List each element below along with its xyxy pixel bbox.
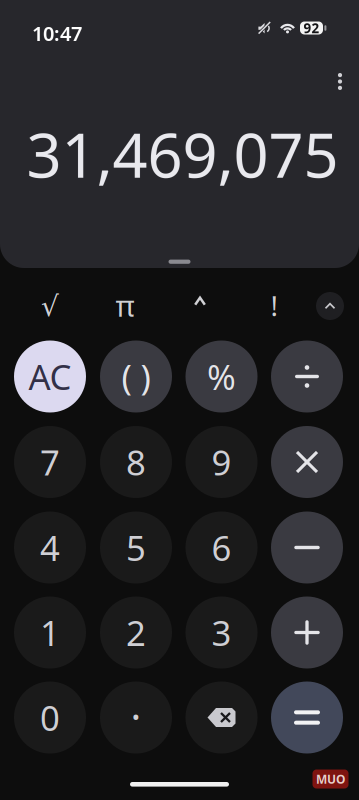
button[interactable]: 5 [100,511,172,583]
staticText: 8 [126,439,146,485]
staticText: 2 [126,609,146,655]
staticText: 92 [303,19,319,37]
button[interactable]: 0 [14,681,86,753]
button[interactable]: ( ) [100,340,172,412]
staticText: 9 [211,439,231,485]
staticText: 7 [40,439,60,485]
button[interactable]: % [185,340,257,412]
staticText: 1 [40,609,60,655]
staticText: 0 [40,694,60,740]
staticText: ! [270,287,278,324]
button[interactable]: Wi-Fi [280,22,295,34]
button[interactable]: Backspace [185,681,257,753]
button[interactable]: More functions [310,286,350,326]
button[interactable]: 8 [100,426,172,498]
button[interactable]: Subtract [271,511,343,583]
staticText: 31,469,075 [26,113,338,195]
button[interactable]: √ [22,284,78,328]
button[interactable]: Multiply [271,426,343,498]
staticText: 3 [211,609,231,655]
staticText: 6 [211,524,231,570]
staticText: ( ) [121,353,150,399]
button[interactable]: ! [246,283,302,327]
staticText: 5 [126,524,146,570]
staticText: 10:47 [32,20,82,47]
button[interactable]: · [100,681,172,753]
button[interactable]: 4 [14,511,86,583]
staticText: MUO [316,771,345,787]
button[interactable]: Add [271,596,343,668]
staticText: % [207,353,236,399]
button[interactable]: Equals [271,681,343,753]
button[interactable]: Divide [271,340,343,412]
button[interactable]: 6 [185,511,257,583]
button[interactable]: π [97,283,153,327]
staticText: √ [41,291,59,322]
button[interactable]: Exponent [172,279,228,323]
staticText: π [115,286,134,325]
button[interactable]: More options [323,64,357,98]
staticText: AC [28,353,71,399]
button[interactable]: AC [14,340,86,412]
staticText: · [130,689,141,742]
button[interactable]: 3 [185,596,257,668]
button[interactable]: 7 [14,426,86,498]
button[interactable]: 9 [185,426,257,498]
button[interactable]: Silent mode [258,22,271,34]
button[interactable]: 2 [100,596,172,668]
staticText: 4 [40,524,60,570]
button[interactable]: 1 [14,596,86,668]
